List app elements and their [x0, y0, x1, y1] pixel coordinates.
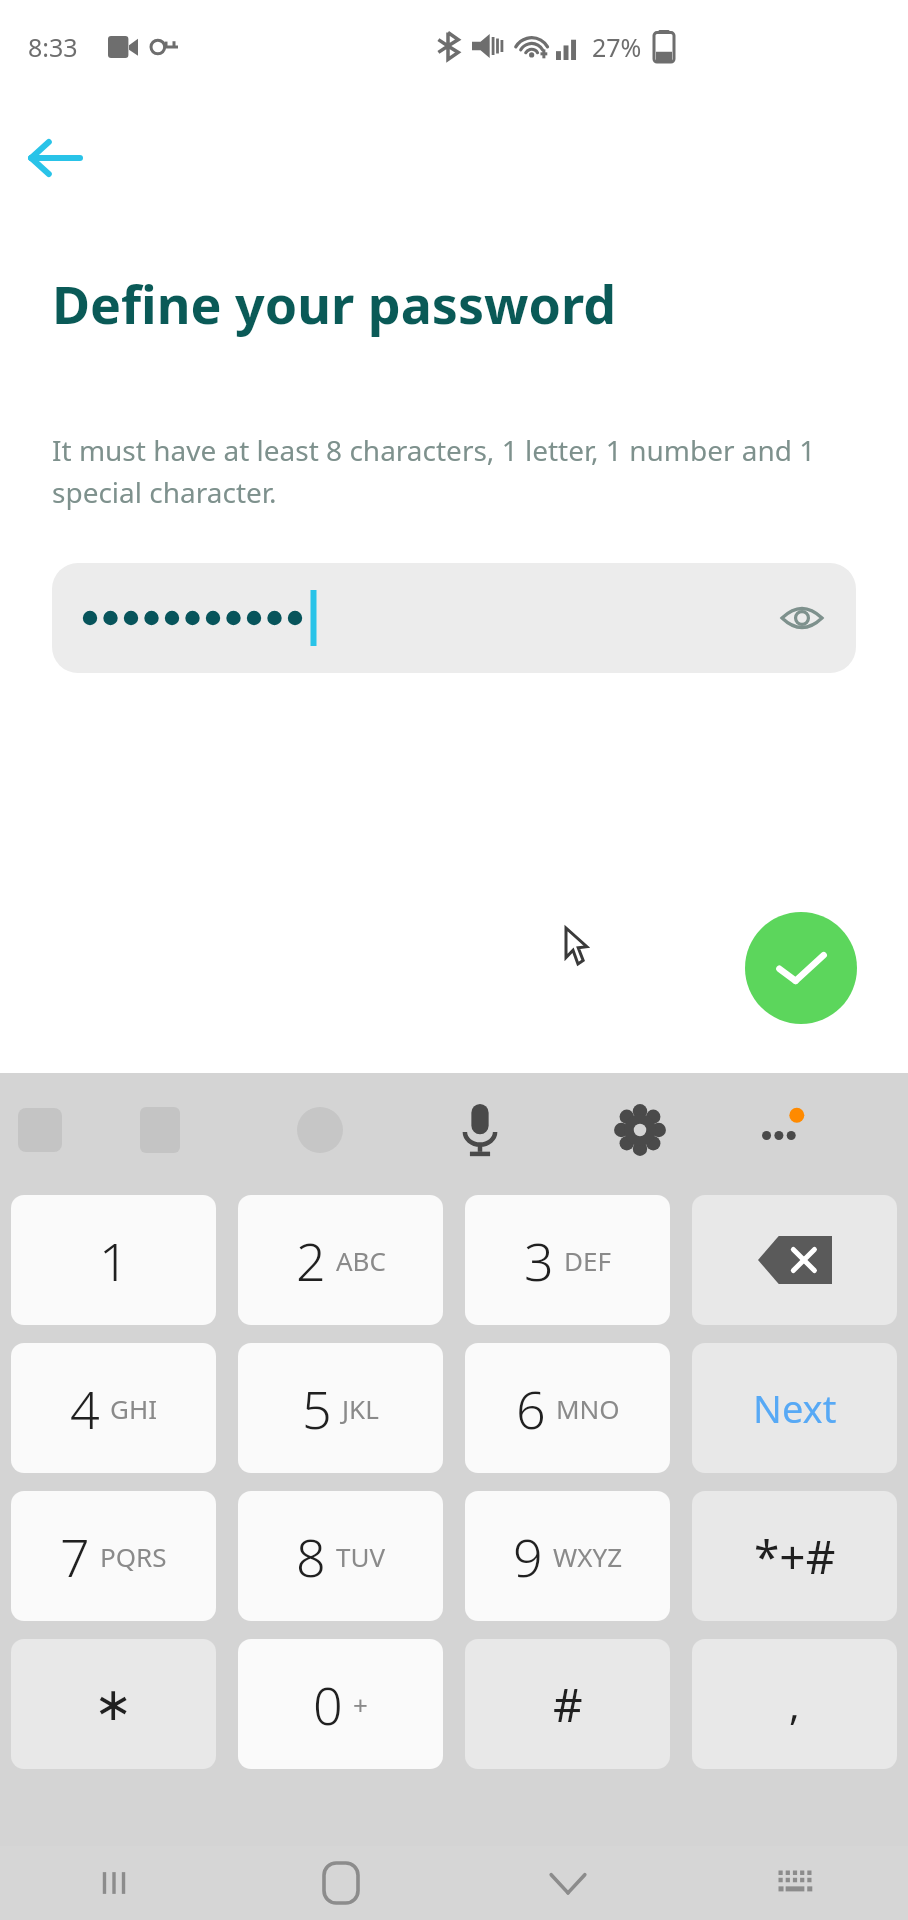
- staticText: JKL: [342, 1391, 379, 1426]
- staticText: ABC: [336, 1243, 386, 1278]
- button[interactable]: Backspace: [692, 1195, 897, 1325]
- button[interactable]: 1: [11, 1195, 216, 1325]
- staticText: 9: [513, 1521, 543, 1592]
- button[interactable]: Home: [227, 1846, 454, 1920]
- button[interactable]: 3: [465, 1195, 670, 1325]
- button[interactable]: Voice input: [400, 1073, 560, 1186]
- button[interactable]: #: [465, 1639, 670, 1769]
- staticText: 2: [296, 1225, 326, 1296]
- button[interactable]: Back: [14, 118, 94, 198]
- staticText: 4: [70, 1373, 100, 1444]
- button[interactable]: Recent apps: [0, 1846, 227, 1920]
- button[interactable]: *+#: [692, 1491, 897, 1621]
- staticText: *+#: [754, 1525, 836, 1588]
- staticText: 7: [60, 1521, 90, 1592]
- staticText: 1: [99, 1225, 129, 1296]
- staticText: #: [553, 1673, 583, 1736]
- staticText: 27%: [592, 30, 642, 64]
- staticText: 8:33: [28, 30, 78, 64]
- button[interactable]: ∗: [11, 1639, 216, 1769]
- staticText: ∗: [94, 1677, 133, 1731]
- button[interactable]: 8: [238, 1491, 443, 1621]
- staticText: 0: [313, 1669, 343, 1740]
- button[interactable]: Show password: [52, 563, 856, 673]
- staticText: GHI: [110, 1391, 158, 1426]
- button[interactable]: Settings: [560, 1073, 720, 1186]
- button[interactable]: 0: [238, 1639, 443, 1769]
- button[interactable]: 9: [465, 1491, 670, 1621]
- button[interactable]: ,: [692, 1639, 897, 1769]
- button[interactable]: Next: [692, 1343, 897, 1473]
- staticText: DEF: [564, 1243, 611, 1278]
- staticText: MNO: [556, 1391, 620, 1426]
- button[interactable]: 4: [11, 1343, 216, 1473]
- staticText: WXYZ: [553, 1539, 623, 1574]
- staticText: 3: [524, 1225, 554, 1296]
- staticText: ,: [789, 1677, 800, 1731]
- button[interactable]: 6: [465, 1343, 670, 1473]
- button[interactable]: 5: [238, 1343, 443, 1473]
- button[interactable]: GIF: [80, 1073, 240, 1186]
- staticText: It must have at least 8 characters, 1 le…: [52, 431, 856, 511]
- button[interactable]: Confirm: [745, 912, 857, 1024]
- button[interactable]: Hide keyboard: [454, 1846, 681, 1920]
- staticText: PQRS: [100, 1539, 167, 1574]
- button[interactable]: 7: [11, 1491, 216, 1621]
- staticText: 5: [302, 1373, 332, 1444]
- button[interactable]: Show password: [770, 586, 834, 650]
- button[interactable]: 2: [238, 1195, 443, 1325]
- button[interactable]: More options: [720, 1073, 840, 1186]
- staticText: TUV: [336, 1539, 386, 1574]
- staticText: Define your password: [52, 268, 617, 339]
- staticText: 8: [296, 1521, 326, 1592]
- button[interactable]: Emoji: [240, 1073, 400, 1186]
- staticText: Next: [753, 1382, 837, 1434]
- button[interactable]: Keyboard switcher: [681, 1846, 908, 1920]
- staticText: +: [353, 1687, 368, 1722]
- staticText: 6: [516, 1373, 546, 1444]
- button[interactable]: Stickers: [0, 1073, 80, 1186]
